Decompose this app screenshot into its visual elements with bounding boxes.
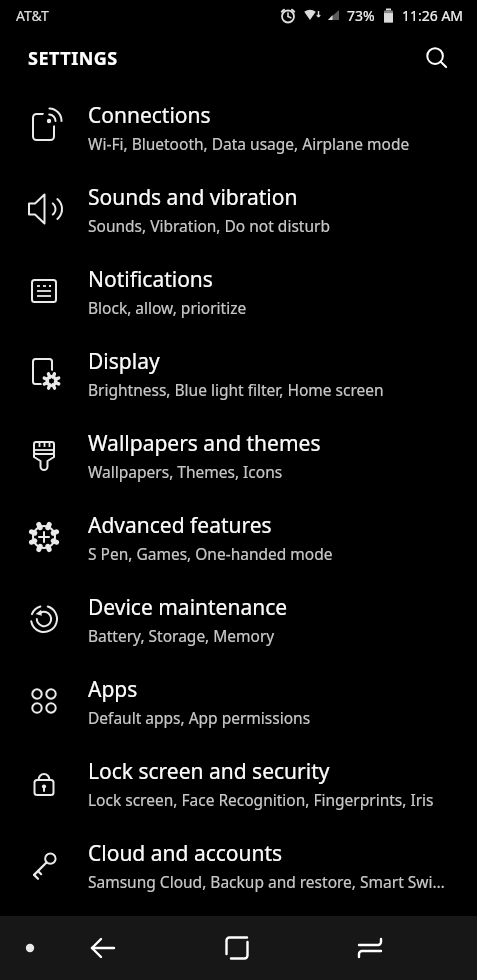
staticText: 73% <box>347 6 375 25</box>
staticText: SETTINGS <box>28 46 118 71</box>
staticText: Block, allow, prioritize <box>88 297 247 318</box>
staticText: Brightness, Blue light filter, Home scre… <box>88 379 384 400</box>
button[interactable]: Wallpapers and themes <box>0 414 477 496</box>
staticText: Connections <box>88 101 211 130</box>
button[interactable]: Connections <box>0 86 477 168</box>
button[interactable] <box>338 916 402 980</box>
staticText: Sounds, Vibration, Do not disturb <box>88 215 330 236</box>
button[interactable]: Device maintenance <box>0 578 477 660</box>
staticText: Battery, Storage, Memory <box>88 625 275 646</box>
staticText: Advanced features <box>88 511 272 540</box>
button[interactable]: Lock screen and security <box>0 742 477 824</box>
staticText: S Pen, Games, One-handed mode <box>88 543 333 564</box>
staticText: 11:26 AM <box>402 6 464 25</box>
staticText: Wi-Fi, Bluetooth, Data usage, Airplane m… <box>88 133 410 154</box>
staticText: Cloud and accounts <box>88 839 283 868</box>
staticText: Lock screen and security <box>88 757 330 786</box>
button[interactable] <box>71 916 135 980</box>
button[interactable]: Advanced features <box>0 496 477 578</box>
button[interactable]: Cloud and accounts <box>0 824 477 906</box>
staticText: Apps <box>88 675 138 704</box>
staticText: Sounds and vibration <box>88 183 298 212</box>
button[interactable] <box>16 934 44 962</box>
button[interactable] <box>205 916 269 980</box>
staticText: Wallpapers, Themes, Icons <box>88 461 283 482</box>
staticText: Lock screen, Face Recognition, Fingerpri… <box>88 789 434 810</box>
staticText: Display <box>88 347 160 376</box>
staticText: Wallpapers and themes <box>88 429 321 458</box>
staticText: Notifications <box>88 265 213 294</box>
staticText: Default apps, App permissions <box>88 707 311 728</box>
staticText: AT&T <box>16 6 49 25</box>
staticText: Samsung Cloud, Backup and restore, Smart… <box>88 871 445 892</box>
button[interactable]: Notifications <box>0 250 477 332</box>
button[interactable]: Display <box>0 332 477 414</box>
staticText: Device maintenance <box>88 593 288 622</box>
button[interactable] <box>419 40 455 76</box>
button[interactable]: Apps <box>0 660 477 742</box>
button[interactable]: Sounds and vibration <box>0 168 477 250</box>
